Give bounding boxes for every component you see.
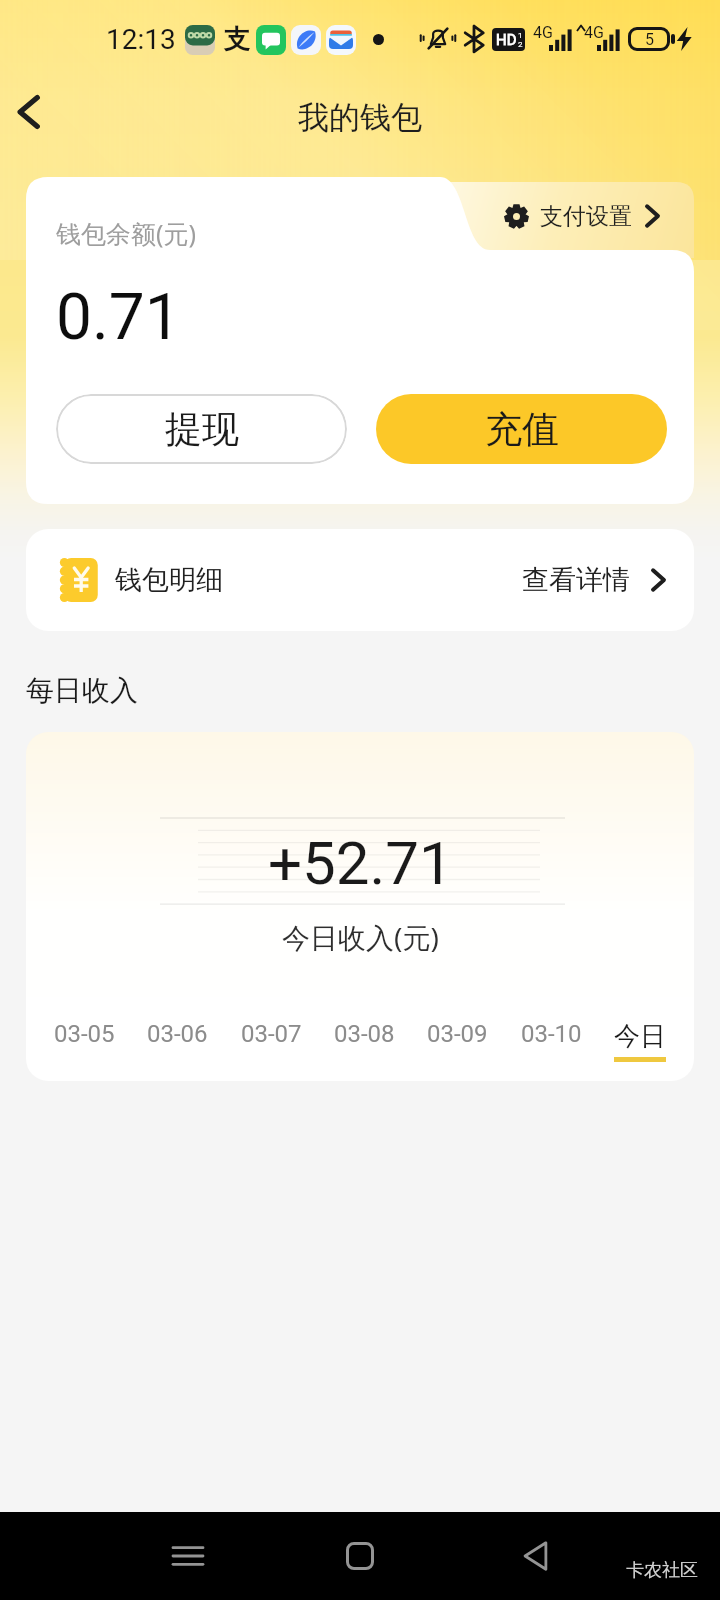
staticText: 03-09 [427, 1020, 488, 1048]
staticText: HD [496, 31, 517, 49]
staticText: 提现 [165, 406, 239, 453]
staticText: 03-05 [54, 1020, 115, 1048]
button[interactable]: 提现 [56, 394, 347, 464]
button[interactable]: 支付设置 [504, 182, 669, 250]
button[interactable]: 03-06 [147, 1020, 208, 1048]
button[interactable]: Home [334, 1530, 386, 1582]
button[interactable]: Recent apps [162, 1530, 214, 1582]
staticText: 03-06 [147, 1020, 208, 1048]
button[interactable]: 03-10 [521, 1020, 582, 1048]
staticText: 支 [224, 23, 250, 56]
staticText: 12:13 [106, 23, 176, 56]
staticText: 03-07 [241, 1020, 302, 1048]
staticText: 1 [518, 31, 523, 40]
button[interactable]: Back [510, 1530, 562, 1582]
staticText: 充值 [485, 406, 559, 453]
button[interactable]: 钱包明细 [26, 529, 694, 631]
button[interactable]: 充值 [376, 394, 667, 464]
staticText: +52.71 [268, 828, 453, 898]
staticText: 今日 [614, 1020, 666, 1053]
staticText: 0.71 [56, 280, 181, 355]
button[interactable]: Back [4, 88, 52, 136]
staticText: 支付设置 [540, 202, 632, 231]
staticText: 4G [533, 23, 553, 42]
staticText: 钱包明细 [115, 563, 223, 597]
staticText: 2 [518, 40, 523, 49]
staticText: 4G [584, 23, 604, 42]
staticText: 03-08 [334, 1020, 395, 1048]
button[interactable]: 03-07 [241, 1020, 302, 1048]
staticText: 我的钱包 [298, 98, 422, 137]
button[interactable]: 今日 [614, 1020, 666, 1062]
staticText: 03-10 [521, 1020, 582, 1048]
button[interactable]: 03-09 [427, 1020, 488, 1048]
button[interactable]: 03-08 [334, 1020, 395, 1048]
staticText: 卡农社区 [626, 1559, 698, 1582]
staticText: 钱包余额(元) [56, 216, 197, 250]
staticText: 5 [645, 30, 654, 49]
staticText: 查看详情 [522, 563, 630, 597]
staticText: 每日收入 [26, 673, 138, 708]
button[interactable]: 03-05 [54, 1020, 115, 1048]
staticText: 今日收入(元) [282, 918, 439, 956]
